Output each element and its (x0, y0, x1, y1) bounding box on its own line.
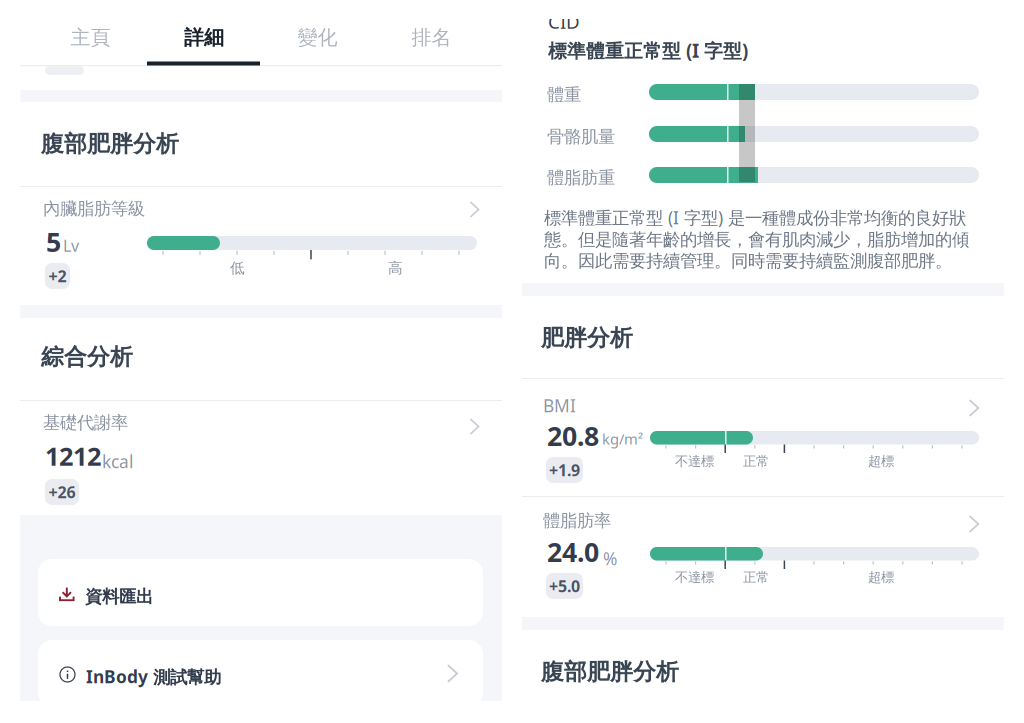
staticText: 腹部肥胖分析 (41, 130, 179, 158)
staticText: kg/m² (602, 429, 643, 448)
staticText: kcal (102, 450, 133, 473)
button[interactable]: 詳細 (147, 0, 261, 75)
staticText: CID (548, 9, 580, 34)
staticText: Lv (63, 235, 79, 256)
staticText: 超標 (868, 453, 894, 469)
button[interactable]: 主頁 (33, 0, 147, 75)
staticText: 正常 (743, 569, 769, 585)
staticText: 詳細 (184, 25, 224, 50)
staticText: 低 (230, 259, 245, 277)
staticText: InBody 測試幫助 (86, 665, 221, 688)
staticText: 排名 (411, 25, 451, 50)
staticText: +5.0 (549, 575, 580, 597)
staticText: % (603, 547, 617, 570)
button[interactable]: InBody 測試幫助 (38, 640, 483, 707)
staticText: 體脂肪重 (547, 167, 615, 188)
staticText: +2 (48, 265, 66, 287)
staticText: 資料匯出 (85, 586, 153, 607)
staticText: 腹部肥胖分析 (541, 658, 679, 686)
staticText: 主頁 (70, 25, 110, 50)
staticText: 骨骼肌量 (547, 126, 615, 147)
button[interactable]: 資料匯出 (38, 559, 483, 626)
staticText: 體脂肪率 (543, 510, 611, 531)
staticText: 1212 (45, 439, 101, 473)
staticText: 變化 (297, 25, 337, 50)
staticText: 基礎代謝率 (43, 412, 128, 433)
staticText: 20.8 (547, 418, 599, 453)
staticText: 不達標 (675, 453, 714, 469)
staticText: BMI (543, 394, 576, 417)
staticText: 肥胖分析 (541, 324, 633, 352)
button[interactable]: 排名 (374, 0, 488, 75)
staticText: 正常 (743, 453, 769, 469)
staticText: 標準體重正常型 (I 字型) (548, 38, 748, 63)
staticText: +26 (48, 481, 75, 503)
staticText: 內臟脂肪等級 (43, 198, 145, 219)
staticText: +1.9 (549, 459, 580, 481)
staticText: 體重 (547, 84, 581, 105)
staticText: 超標 (868, 569, 894, 585)
staticText: 綜合分析 (41, 343, 133, 371)
staticText: 不達標 (675, 569, 714, 585)
staticText: 5 (46, 224, 61, 259)
staticText: 標準體重正常型 (I 字型) 是一種體成份非常均衡的良好狀態。但是隨著年齡的增長… (544, 206, 969, 272)
staticText: 24.0 (547, 534, 599, 569)
staticText: 高 (388, 259, 403, 277)
button[interactable]: 變化 (260, 0, 374, 75)
